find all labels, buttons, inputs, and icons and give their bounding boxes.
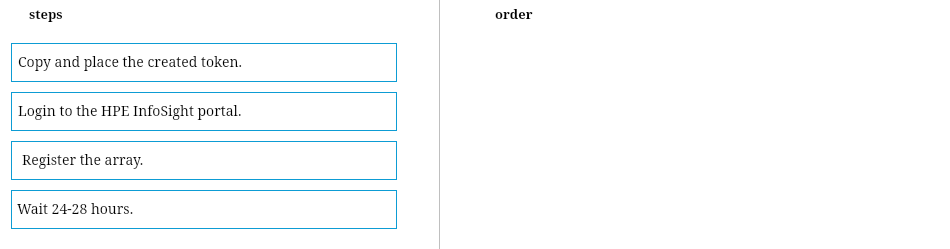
staticText: Login to the HPE InfoSight portal. xyxy=(18,101,242,120)
staticText: Wait 24-28 hours. xyxy=(17,199,134,218)
staticText: order xyxy=(495,5,533,23)
button[interactable]: Copy and place the created token. xyxy=(11,43,397,82)
button[interactable]: steps xyxy=(29,5,63,23)
staticText: Register the array. xyxy=(22,150,144,169)
staticText: steps xyxy=(29,5,63,23)
button[interactable]: Wait 24-28 hours. xyxy=(11,190,397,229)
staticText: Copy and place the created token. xyxy=(18,52,242,71)
button[interactable]: Register the array. xyxy=(11,141,397,180)
button[interactable]: Login to the HPE InfoSight portal. xyxy=(11,92,397,131)
button[interactable]: order xyxy=(495,5,533,23)
